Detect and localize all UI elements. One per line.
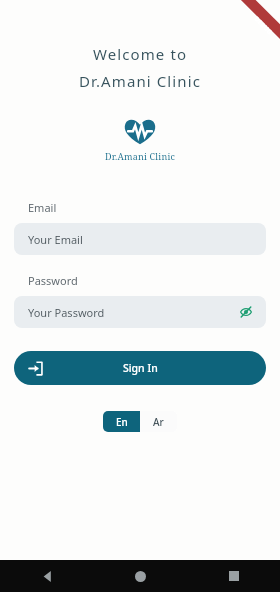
staticText: Email <box>28 200 57 215</box>
button[interactable]: Recent apps <box>187 560 280 592</box>
staticText: Ar <box>153 415 164 429</box>
staticText: Dr.Amani Clinic <box>0 71 280 91</box>
button[interactable]: En <box>103 411 140 432</box>
button[interactable]: Ar <box>140 411 177 432</box>
staticText: Dr.Amani Clinic <box>105 150 176 162</box>
staticText: Password <box>28 273 78 288</box>
button[interactable]: Your Email <box>14 223 266 255</box>
staticText: Your Password <box>28 305 105 320</box>
button[interactable]: Home <box>94 560 187 592</box>
button[interactable]: Sign In <box>14 351 266 385</box>
staticText: Sign In <box>123 361 158 375</box>
staticText: Your Email <box>28 232 83 247</box>
button[interactable]: Your Password <box>14 296 266 328</box>
staticText: Welcome to <box>0 44 280 64</box>
staticText: DEBUG <box>252 15 274 37</box>
button[interactable]: Show password <box>236 302 256 322</box>
staticText: En <box>116 415 128 429</box>
button[interactable]: Back <box>0 560 94 592</box>
